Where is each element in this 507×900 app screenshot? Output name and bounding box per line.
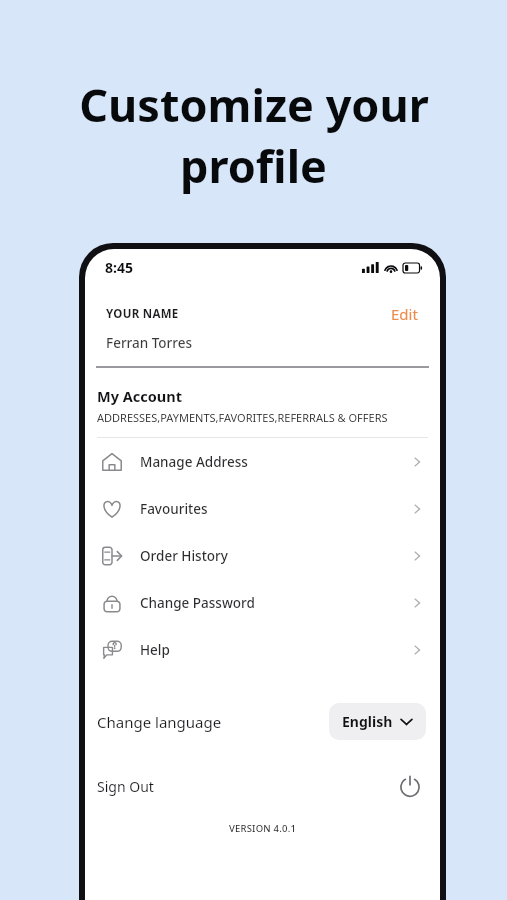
staticText: Favourites <box>140 500 208 518</box>
button[interactable]: English <box>329 703 426 740</box>
staticText: VERSION 4.0.1 <box>85 822 440 835</box>
staticText: profile <box>180 135 327 196</box>
staticText: Ferran Torres <box>106 334 193 352</box>
button[interactable]: Favourites <box>85 485 440 532</box>
button[interactable]: Help <box>85 626 440 673</box>
staticText: English <box>342 712 393 731</box>
staticText: Sign Out <box>97 777 154 796</box>
staticText: ADDRESSES,PAYMENTS,FAVORITES,REFERRALS &… <box>97 410 388 425</box>
button[interactable]: Change Password <box>85 579 440 626</box>
staticText: Customize your <box>79 74 429 135</box>
staticText: Manage Address <box>140 453 248 471</box>
button[interactable]: Sign Out <box>85 770 440 802</box>
other: Sign out <box>396 772 424 800</box>
staticText: 8:45 <box>105 258 133 277</box>
button[interactable]: Edit <box>387 302 422 326</box>
button[interactable]: Order History <box>85 532 440 579</box>
staticText: My Account <box>97 386 182 406</box>
staticText: Help <box>140 641 170 659</box>
staticText: Change language <box>97 712 222 732</box>
staticText: Change Password <box>140 594 255 612</box>
staticText: YOUR NAME <box>106 306 179 322</box>
staticText: Order History <box>140 547 228 565</box>
button[interactable]: Manage Address <box>85 438 440 485</box>
staticText: Edit <box>391 304 418 324</box>
